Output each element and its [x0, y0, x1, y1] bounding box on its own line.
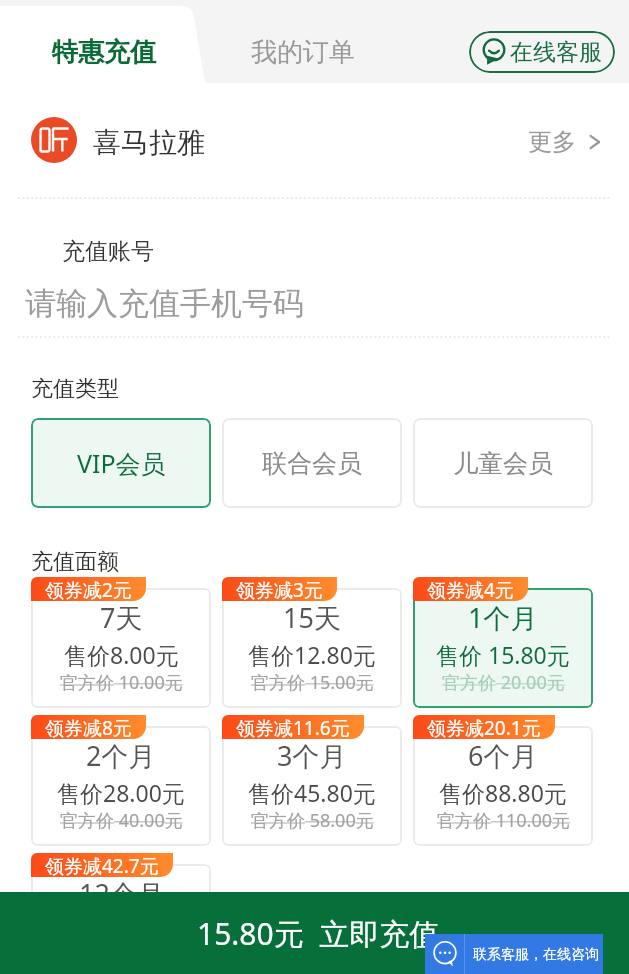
- button[interactable]: 我的订单: [205, 6, 397, 83]
- staticText: 领券减4元: [427, 577, 514, 601]
- staticText: 15.80元 立即充值: [197, 913, 440, 954]
- staticText: 充值账号: [62, 237, 154, 266]
- staticText: 官方价 58.00元: [251, 808, 374, 832]
- staticText: 充值类型: [31, 375, 119, 403]
- staticText: 售价 15.80元: [436, 639, 570, 669]
- button[interactable]: 6个月: [413, 726, 593, 846]
- staticText: 7天: [100, 599, 143, 633]
- staticText: 官方价 40.00元: [60, 808, 183, 832]
- staticText: 官方价 20.00元: [442, 670, 565, 694]
- staticText: 2个月: [86, 737, 156, 771]
- button[interactable]: 12个月: [31, 864, 211, 974]
- button[interactable]: 在线客服: [469, 31, 615, 73]
- staticText: 售价8.00元: [64, 639, 179, 669]
- staticText: 在线客服: [510, 38, 602, 67]
- staticText: 我的订单: [251, 36, 355, 69]
- button[interactable]: 15天: [222, 588, 402, 708]
- staticText: 特惠充值: [52, 36, 156, 69]
- staticText: 6个月: [468, 737, 538, 771]
- button[interactable]: 15.80元 立即充值: [0, 892, 629, 974]
- staticText: 售价12.80元: [248, 639, 376, 669]
- staticText: VIP会员: [77, 446, 166, 480]
- staticText: 官方价 110.00元: [437, 808, 570, 832]
- staticText: 领券减3元: [236, 577, 323, 601]
- other: Contact customer service: [432, 941, 458, 967]
- staticText: 请输入充值手机号码: [25, 284, 304, 323]
- staticText: 联系客服，在线咨询: [473, 946, 599, 964]
- staticText: 3个月: [277, 737, 347, 771]
- button[interactable]: 3个月: [222, 726, 402, 846]
- staticText: 儿童会员: [453, 448, 553, 479]
- staticText: 领券减8元: [45, 715, 132, 739]
- button[interactable]: 7天: [31, 588, 211, 708]
- staticText: 更多: [528, 127, 576, 157]
- button[interactable]: Contact customer service: [425, 934, 603, 974]
- staticText: 官方价 15.00元: [251, 670, 374, 694]
- staticText: 领券减2元: [45, 577, 132, 601]
- staticText: 领券减20.1元: [427, 715, 541, 739]
- staticText: 领券减42.7元: [45, 853, 159, 877]
- staticText: 官方价 10.00元: [60, 670, 183, 694]
- button[interactable]: 特惠充值: [0, 6, 200, 83]
- staticText: 售价28.00元: [57, 777, 185, 807]
- staticText: 1个月: [468, 599, 538, 633]
- staticText: 联合会员: [262, 448, 362, 479]
- button[interactable]: 2个月: [31, 726, 211, 846]
- button[interactable]: 喜马拉雅: [0, 83, 629, 198]
- staticText: 领券减11.6元: [236, 715, 350, 739]
- staticText: 喜马拉雅: [93, 125, 205, 160]
- staticText: 售价88.80元: [439, 777, 567, 807]
- staticText: 12个月: [79, 875, 164, 909]
- button[interactable]: 联合会员: [222, 418, 402, 508]
- button[interactable]: 儿童会员: [413, 418, 593, 508]
- button[interactable]: VIP会员: [31, 418, 211, 508]
- button[interactable]: 1个月: [413, 588, 593, 708]
- staticText: 充值面额: [31, 548, 119, 576]
- staticText: 售价45.80元: [248, 777, 376, 807]
- staticText: 15天: [283, 599, 341, 633]
